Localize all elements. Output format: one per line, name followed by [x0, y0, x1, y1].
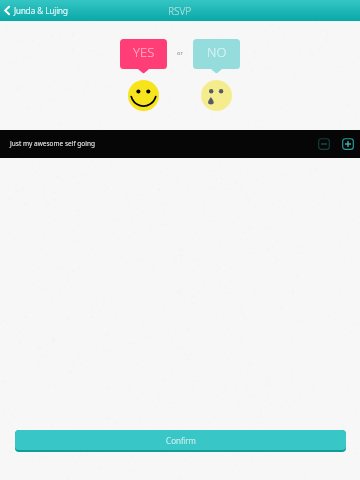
button[interactable]: NO: [193, 39, 240, 74]
button[interactable]: YES: [120, 39, 167, 74]
button[interactable]: Add guest: [342, 138, 354, 150]
button[interactable]: Remove guest: [318, 138, 330, 150]
staticText: YES: [133, 43, 155, 61]
staticText: Confirm: [166, 435, 196, 446]
button[interactable]: Junda & Lujing: [0, 3, 76, 18]
staticText: Junda & Lujing: [14, 5, 68, 16]
staticText: NO: [207, 43, 227, 61]
button[interactable]: Confirm: [15, 430, 346, 452]
staticText: RSVP: [168, 4, 192, 18]
staticText: or: [177, 49, 183, 57]
staticText: Just my awesome self going: [10, 139, 95, 148]
